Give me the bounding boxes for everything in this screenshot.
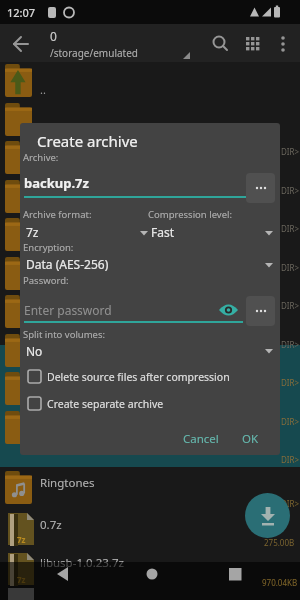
button[interactable] — [246, 173, 275, 203]
staticText: DIR> — [281, 185, 300, 196]
staticText: 7z — [17, 574, 26, 585]
staticText: 970.04KB — [262, 577, 298, 588]
button[interactable]: Cancel — [178, 427, 224, 451]
button[interactable] — [0, 548, 300, 588]
button[interactable] — [23, 253, 274, 271]
button[interactable] — [48, 559, 78, 589]
button[interactable] — [27, 394, 257, 414]
button[interactable] — [6, 29, 34, 57]
staticText: Fast — [151, 224, 175, 240]
staticText: Create separate archive — [47, 397, 164, 411]
staticText: OK — [242, 431, 259, 447]
button[interactable] — [137, 559, 167, 589]
button[interactable] — [246, 296, 275, 326]
staticText: DIR> — [281, 377, 300, 388]
button[interactable] — [220, 559, 250, 589]
staticText: libusb-1.0.23.7z — [40, 555, 124, 571]
button[interactable] — [0, 467, 300, 508]
staticText: DIR> — [281, 223, 300, 234]
staticText: 7z — [17, 534, 26, 545]
staticText: No — [26, 343, 43, 359]
staticText: .. — [40, 82, 46, 97]
staticText: Data (AES-256) — [26, 256, 109, 272]
button[interactable] — [272, 31, 294, 57]
staticText: DIR> — [281, 339, 300, 350]
staticText: backup.7z — [24, 174, 89, 192]
button[interactable] — [0, 508, 300, 548]
staticText: 7z — [26, 224, 39, 240]
button[interactable]: OK — [234, 427, 266, 451]
button[interactable] — [240, 31, 266, 57]
staticText: DIR> — [281, 498, 300, 509]
staticText: Delete source files after compression — [47, 370, 230, 384]
staticText: Cancel — [183, 431, 219, 447]
staticText: DIR> — [281, 300, 300, 311]
staticText: Password: — [23, 274, 69, 287]
staticText: 275.00B — [264, 537, 295, 548]
button[interactable] — [217, 299, 240, 320]
button[interactable] — [27, 367, 257, 387]
staticText: Archive format: — [23, 208, 92, 221]
button[interactable] — [46, 44, 196, 61]
button[interactable] — [24, 168, 244, 194]
button[interactable] — [24, 298, 220, 320]
staticText: DIR> — [281, 416, 300, 427]
button[interactable] — [207, 31, 233, 57]
button[interactable] — [245, 493, 290, 538]
staticText: 12:07 — [7, 5, 36, 20]
staticText: Create archive — [37, 131, 138, 151]
staticText: 0 — [50, 28, 57, 44]
staticText: DIR> — [281, 454, 300, 465]
staticText: DIR> — [281, 262, 300, 273]
staticText: Compression level: — [148, 208, 233, 221]
staticText: Ringtones — [40, 475, 95, 491]
staticText: Archive: — [23, 151, 59, 164]
staticText: Enter password — [24, 302, 112, 318]
staticText: Encryption: — [23, 241, 74, 254]
staticText: /storage/emulated — [50, 46, 138, 60]
button[interactable] — [23, 221, 148, 239]
button[interactable] — [150, 221, 274, 239]
staticText: Split into volumes: — [23, 328, 106, 341]
staticText: 0.7z — [40, 517, 62, 533]
staticText: 970.04KB — [262, 577, 298, 588]
staticText: DIR> — [281, 146, 300, 157]
button[interactable] — [23, 340, 274, 358]
